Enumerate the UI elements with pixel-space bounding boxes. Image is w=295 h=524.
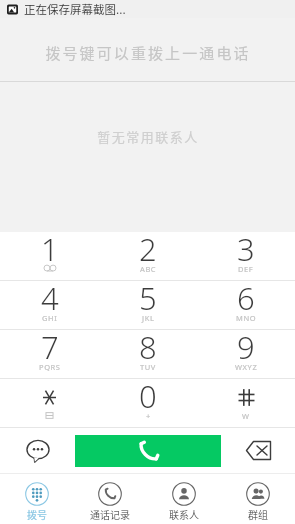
staticText: GHI bbox=[42, 313, 58, 323]
button[interactable]: 1 bbox=[0, 232, 99, 280]
button[interactable]: 8 bbox=[99, 330, 197, 378]
staticText: 1 bbox=[41, 228, 59, 270]
staticText: 2 bbox=[139, 228, 157, 270]
staticText: 通话记录 bbox=[90, 507, 130, 521]
button[interactable] bbox=[0, 379, 99, 427]
staticText: 8 bbox=[139, 326, 157, 368]
button[interactable]: 5 bbox=[99, 281, 197, 329]
staticText: 4 bbox=[41, 277, 59, 319]
staticText: MNO bbox=[236, 313, 257, 323]
button[interactable]: 7 bbox=[0, 330, 99, 378]
staticText: 暂无常用联系人 bbox=[97, 127, 199, 146]
staticText: PQRS bbox=[39, 362, 61, 372]
staticText: 拨号 bbox=[27, 507, 47, 521]
staticText: 7 bbox=[41, 326, 59, 368]
button[interactable]: 拨号 bbox=[0, 474, 73, 524]
button[interactable]: Delete bbox=[221, 428, 295, 473]
staticText: DEF bbox=[238, 264, 254, 274]
button[interactable]: 0 bbox=[99, 379, 197, 427]
staticText: 0 bbox=[139, 375, 157, 417]
button[interactable]: 4 bbox=[0, 281, 99, 329]
staticText: W bbox=[242, 411, 250, 421]
button[interactable]: 联系人 bbox=[147, 474, 221, 524]
staticText: JKL bbox=[142, 313, 155, 323]
button[interactable]: Call bbox=[75, 435, 221, 467]
button[interactable]: Message bbox=[0, 428, 75, 473]
staticText: 正在保存屏幕截图... bbox=[24, 1, 126, 18]
staticText: ABC bbox=[140, 264, 157, 274]
staticText: 群组 bbox=[248, 507, 268, 521]
staticText: 拨号键可以重拨上一通电话 bbox=[45, 42, 251, 64]
staticText: TUV bbox=[140, 362, 156, 372]
button[interactable]: 9 bbox=[197, 330, 295, 378]
staticText: WXYZ bbox=[235, 362, 258, 372]
staticText: 9 bbox=[237, 326, 255, 368]
button[interactable]: 3 bbox=[197, 232, 295, 280]
button[interactable]: W bbox=[197, 379, 295, 427]
staticText: + bbox=[146, 411, 151, 421]
staticText: 联系人 bbox=[169, 507, 199, 521]
staticText: 6 bbox=[237, 277, 255, 319]
button[interactable]: 6 bbox=[197, 281, 295, 329]
button[interactable]: 群组 bbox=[221, 474, 295, 524]
button[interactable]: 2 bbox=[99, 232, 197, 280]
staticText: 5 bbox=[139, 277, 157, 319]
button[interactable]: 通话记录 bbox=[73, 474, 147, 524]
staticText: 3 bbox=[237, 228, 255, 270]
